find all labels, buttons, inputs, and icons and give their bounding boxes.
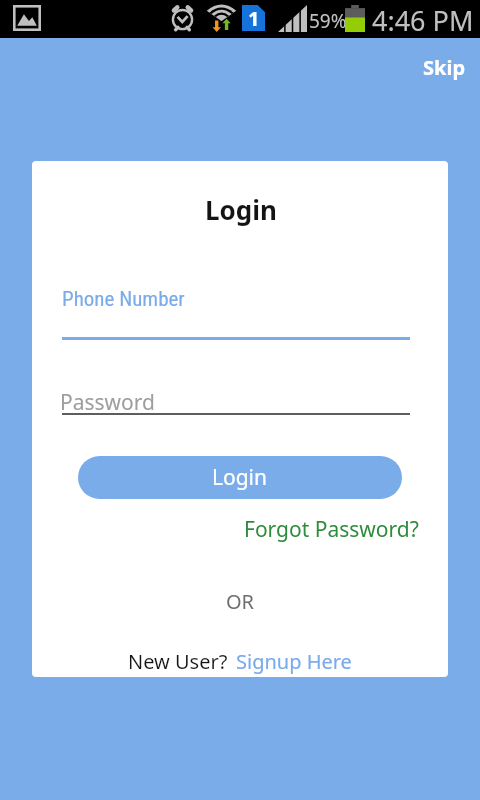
staticText: Signup Here (236, 648, 352, 675)
button[interactable]: Password (62, 388, 410, 415)
other: Wi-Fi connected (207, 3, 236, 32)
button[interactable]: Forgot Password? (244, 515, 419, 544)
staticText: New User? (128, 648, 228, 675)
staticText: 4:46 PM (372, 2, 474, 39)
other: Cellular signal full (278, 5, 307, 32)
staticText: 1 (248, 5, 260, 31)
button[interactable]: Login (78, 456, 402, 499)
staticText: OR (226, 588, 255, 615)
other: Screenshot captured (13, 5, 41, 31)
staticText: Skip (423, 54, 466, 81)
staticText: Login (205, 192, 277, 227)
staticText: Password (60, 388, 155, 415)
button[interactable]: Skip (417, 48, 472, 87)
staticText: Phone Number (62, 287, 185, 312)
other: 1 new notification (242, 5, 265, 31)
staticText: Login (212, 463, 268, 492)
button[interactable]: Phone Number (62, 284, 410, 340)
other: Battery 59 percent (345, 5, 365, 32)
staticText: 59% (309, 8, 347, 34)
other: Alarm set (169, 4, 196, 31)
staticText: Forgot Password? (244, 515, 419, 544)
button[interactable]: Signup Here (232, 648, 356, 675)
